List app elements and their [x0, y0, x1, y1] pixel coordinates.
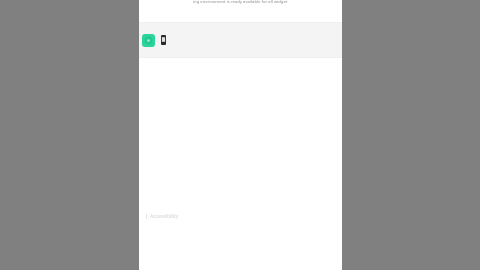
button[interactable]: Device	[161, 35, 166, 45]
button[interactable]: App icon	[142, 34, 155, 47]
staticText: Accessibility	[150, 213, 179, 220]
button[interactable]: Accessibility	[146, 213, 179, 220]
staticText: ing environment is ready available for a…	[193, 0, 288, 5]
button[interactable]: App icon	[139, 22, 342, 58]
